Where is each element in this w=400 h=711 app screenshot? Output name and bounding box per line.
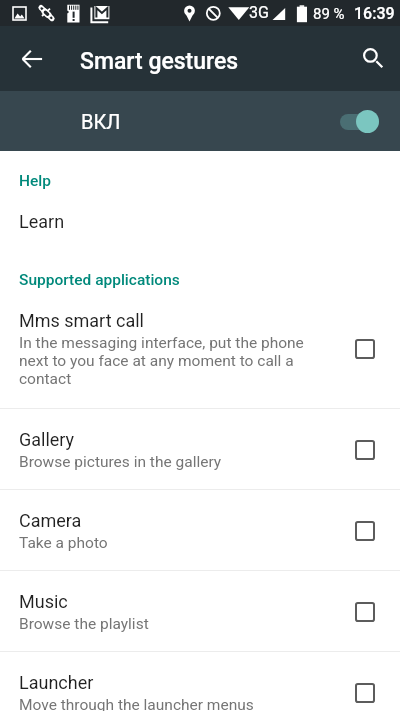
staticText: In the messaging interface, put the phon… xyxy=(19,334,304,388)
staticText: ВКЛ xyxy=(81,110,121,133)
staticText: Gallery xyxy=(19,429,75,450)
button[interactable]: Supported applications xyxy=(0,271,400,289)
staticText: Mms smart call xyxy=(19,310,144,331)
staticText: 89 % xyxy=(313,5,345,23)
button[interactable]: Gallery xyxy=(0,409,400,489)
button[interactable]: Mms smart call xyxy=(0,310,400,408)
staticText: Smart gestures xyxy=(80,48,239,75)
button[interactable]: Camera xyxy=(0,490,400,570)
staticText: Help xyxy=(19,172,51,190)
staticText: Launcher xyxy=(19,672,94,693)
staticText: 3G xyxy=(249,3,269,22)
button[interactable]: Search xyxy=(347,36,393,82)
button[interactable]: Launcher xyxy=(0,652,400,711)
staticText: Camera xyxy=(19,510,82,531)
staticText: Browse the playlist xyxy=(19,615,149,633)
button[interactable]: ВКЛ xyxy=(0,91,400,151)
staticText: Music xyxy=(19,591,68,612)
button[interactable]: Back xyxy=(8,35,56,83)
button[interactable]: Music xyxy=(0,571,400,651)
staticText: Browse pictures in the gallery xyxy=(19,453,222,471)
staticText: Learn xyxy=(19,211,65,232)
staticText: 16:39 xyxy=(354,4,395,23)
staticText: Take a photo xyxy=(19,534,108,552)
staticText: Move through the launcher menus xyxy=(19,696,254,711)
staticText: Supported applications xyxy=(19,271,180,289)
button[interactable]: Help xyxy=(0,172,400,190)
button[interactable]: Learn xyxy=(0,211,400,232)
